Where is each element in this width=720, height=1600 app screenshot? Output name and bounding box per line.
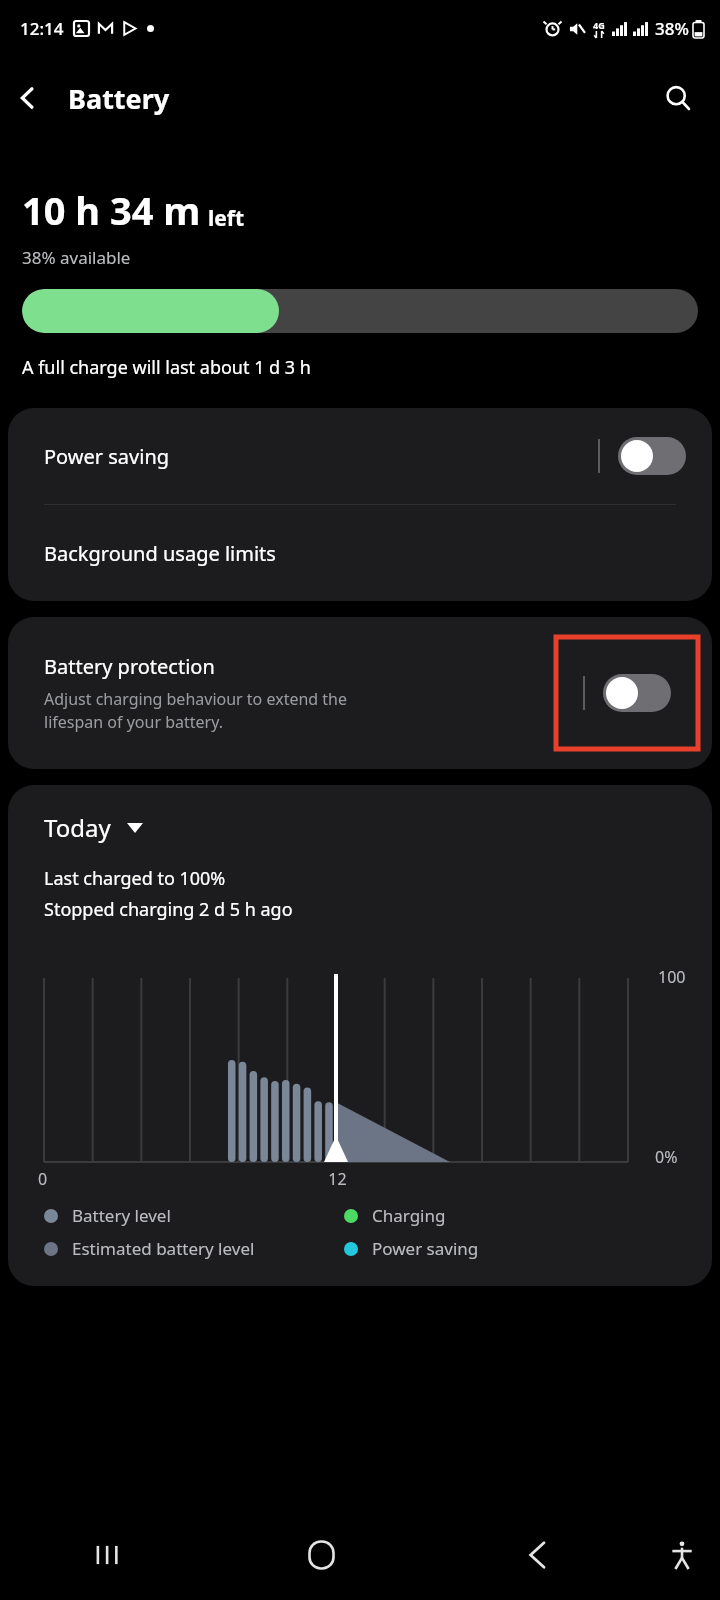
staticText: Battery level [72,1204,171,1227]
staticText: 10 h 34 m [22,184,201,236]
staticText: 12 [328,1168,347,1190]
staticText: 0% [655,1146,678,1168]
staticText: A full charge will last about 1 d 3 h [22,355,311,380]
staticText: 0 [38,1168,48,1190]
button[interactable]: Power saving [8,408,712,504]
staticText: left [208,204,245,233]
staticText: Charging [372,1204,446,1227]
button[interactable]: Accessibility [644,1510,720,1600]
button[interactable]: Recents [0,1510,214,1600]
staticText: Stopped charging 2 d 5 h ago [44,897,293,922]
staticText: 4G [593,19,605,31]
staticText: Power saving [372,1237,479,1260]
button[interactable]: Back [429,1510,644,1600]
staticText: 100 [658,966,686,988]
button[interactable]: Search [650,70,706,126]
button[interactable]: Battery protection [8,617,712,769]
staticText: Last charged to 100% [44,866,226,891]
button[interactable]: Background usage limits [8,505,712,601]
staticText: Background usage limits [44,540,276,567]
staticText: Battery protection [44,653,215,680]
staticText: Today [44,811,111,844]
button[interactable]: Toggle [618,437,686,475]
staticText: 12:14 [20,17,64,40]
button[interactable]: Home [214,1510,429,1600]
button[interactable]: Back [0,70,56,126]
button[interactable]: Toggle [603,674,671,712]
staticText: 38% available [22,246,131,269]
staticText: Battery [68,80,170,117]
staticText: Power saving [44,443,598,470]
staticText: 38% [655,17,689,40]
staticText: Estimated battery level [72,1237,255,1260]
button[interactable]: Today [44,811,143,844]
staticText: Adjust charging behaviour to extend the … [44,688,348,733]
